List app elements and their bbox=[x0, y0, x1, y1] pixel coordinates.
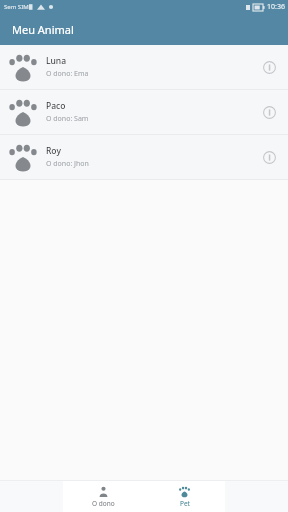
button[interactable]: Luna bbox=[0, 45, 288, 89]
button[interactable]: Informações sobre Luna bbox=[258, 56, 280, 78]
button[interactable]: Pet bbox=[144, 481, 225, 512]
staticText: O dono: Ema bbox=[46, 69, 89, 79]
staticText: 10:36 bbox=[267, 2, 285, 12]
staticText: O dono: Sam bbox=[46, 114, 89, 124]
staticText: O dono bbox=[92, 499, 115, 508]
button[interactable]: O dono bbox=[63, 481, 144, 512]
staticText: Luna bbox=[46, 55, 67, 67]
button[interactable]: Informações sobre Roy bbox=[258, 146, 280, 168]
button[interactable]: Paco bbox=[0, 90, 288, 134]
staticText: Sem SIM bbox=[4, 3, 29, 11]
button[interactable]: Roy bbox=[0, 135, 288, 179]
staticText: Paco bbox=[46, 100, 66, 112]
staticText: O dono: Jhon bbox=[46, 159, 89, 169]
staticText: Pet bbox=[180, 499, 190, 508]
button[interactable]: Informações sobre Paco bbox=[258, 101, 280, 123]
staticText: Roy bbox=[46, 145, 61, 157]
staticText: Meu Animal bbox=[12, 22, 74, 37]
